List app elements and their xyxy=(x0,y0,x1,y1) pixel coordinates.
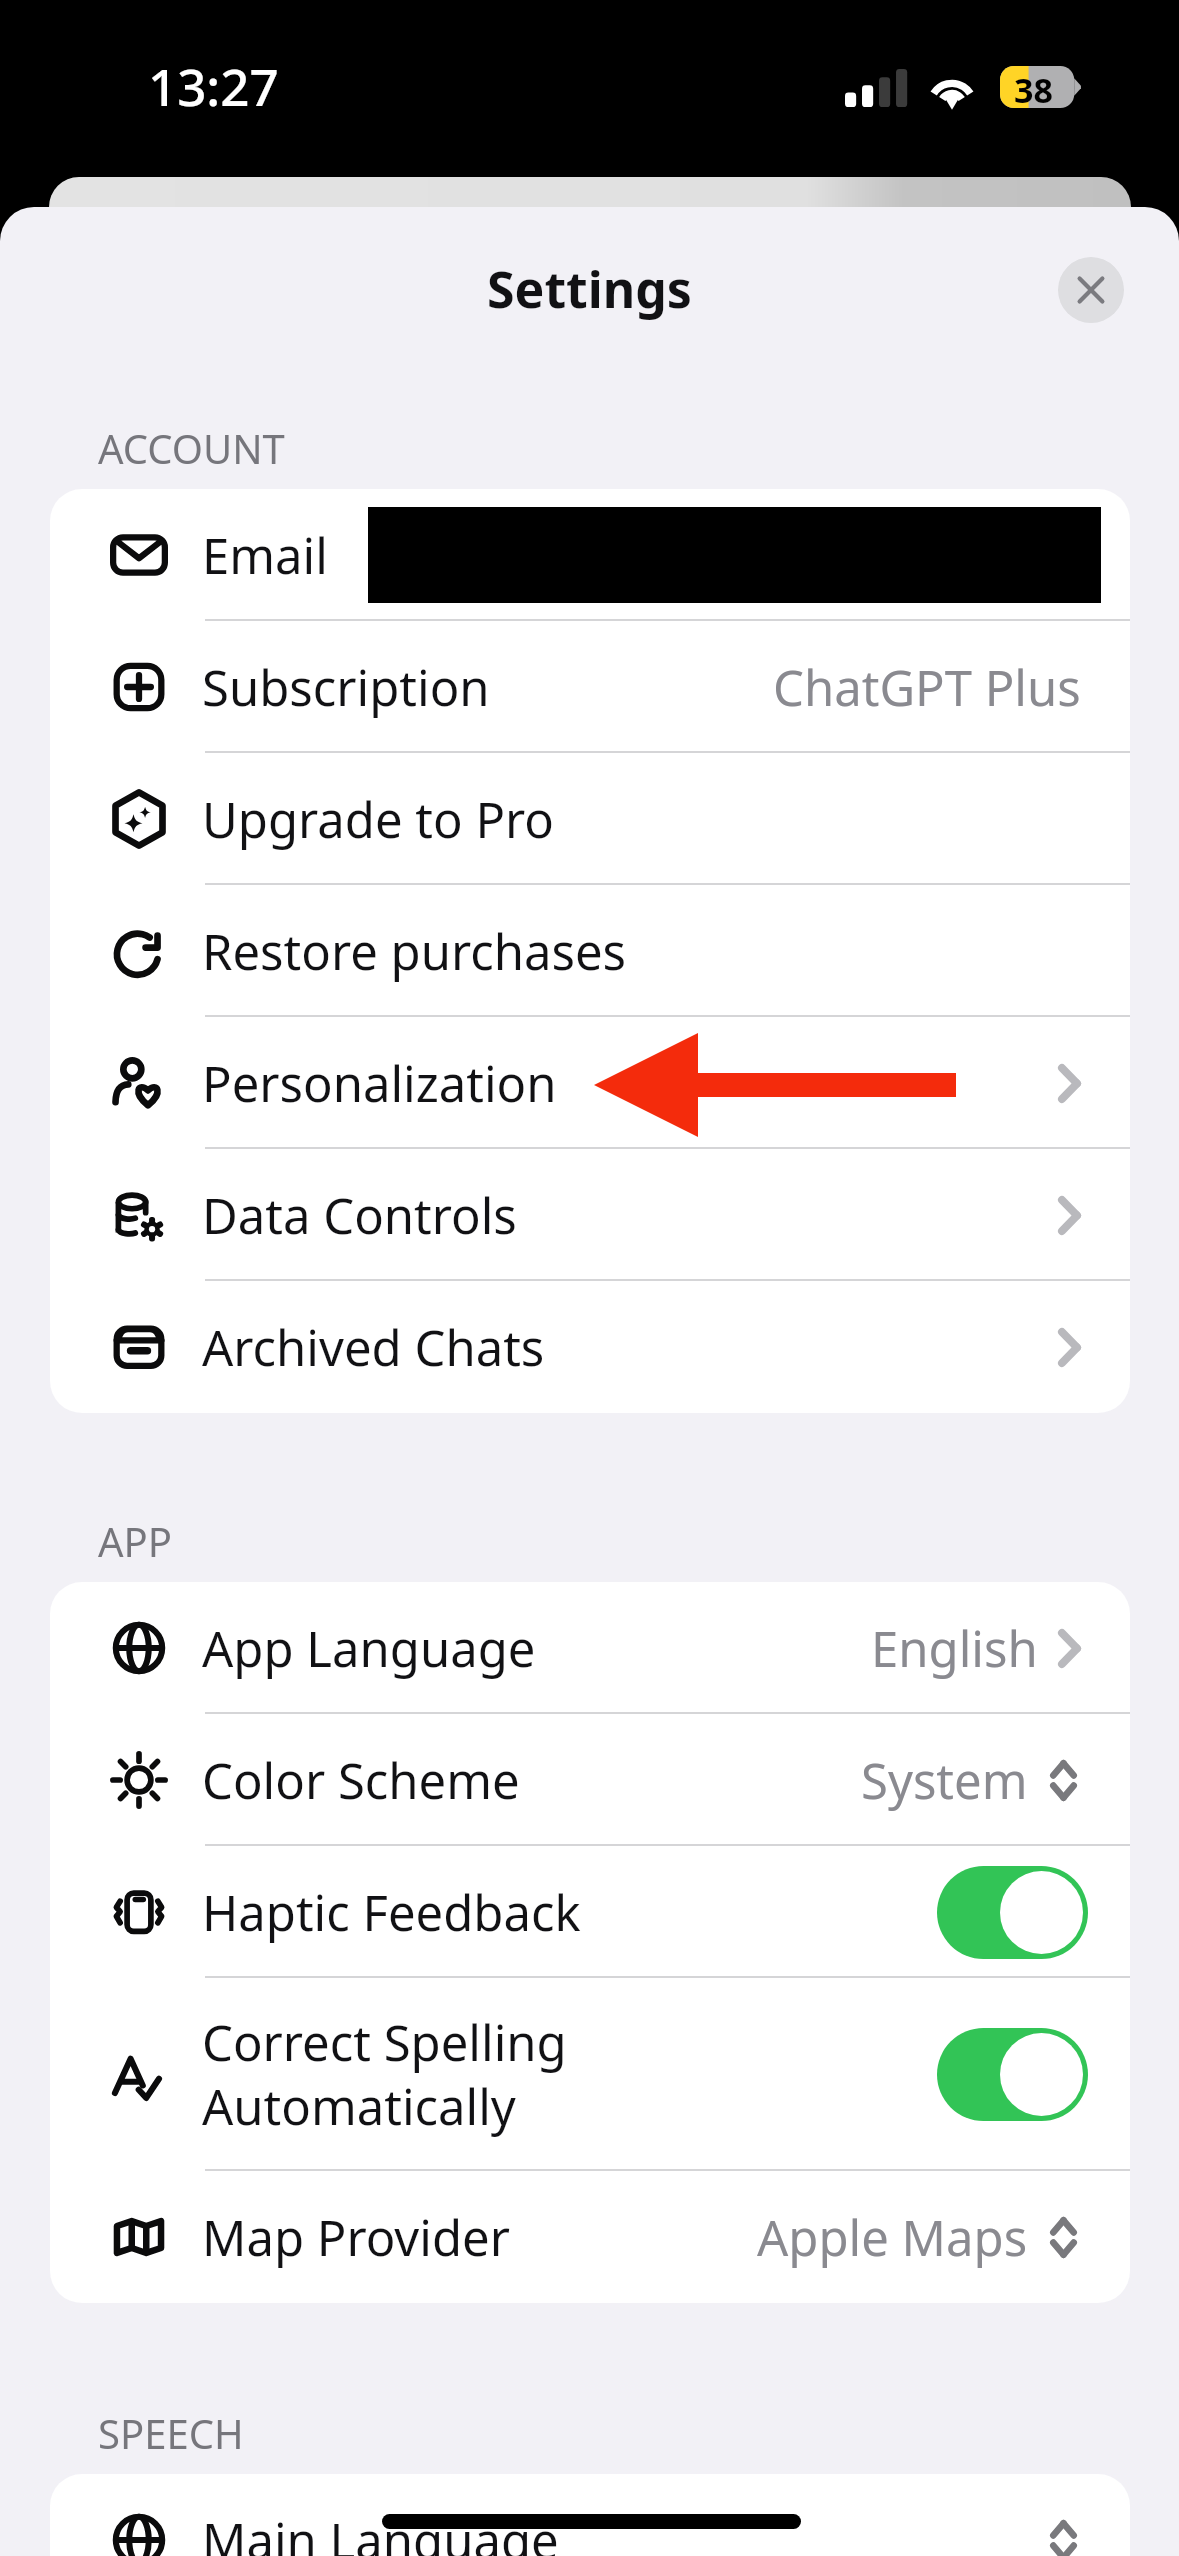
button[interactable]: Correct Spelling Automatically xyxy=(50,1978,1130,2171)
button[interactable]: App Language xyxy=(50,1582,1130,1714)
staticText: Haptic Feedback xyxy=(202,1879,581,1946)
button[interactable]: Upgrade to Pro xyxy=(50,753,1130,885)
staticText: Settings xyxy=(487,255,692,323)
staticText: Main Language xyxy=(202,2507,559,2556)
button[interactable]: Personalization xyxy=(50,1017,1130,1149)
staticText: App Language xyxy=(202,1615,536,1682)
staticText: ChatGPT Plus xyxy=(773,654,1081,721)
button[interactable]: Main Language xyxy=(50,2474,1130,2556)
button[interactable]: Toggle Correct Spelling Automatically xyxy=(937,2028,1088,2121)
staticText: 38 xyxy=(1014,67,1053,113)
staticText: Email xyxy=(202,522,328,589)
staticText: ACCOUNT xyxy=(98,421,285,475)
button[interactable]: Toggle Haptic Feedback xyxy=(937,1866,1088,1959)
button[interactable]: Close settings xyxy=(1058,257,1124,323)
staticText: Subscription xyxy=(202,654,490,721)
button[interactable]: Map Provider xyxy=(50,2171,1130,2303)
staticText: System xyxy=(861,1747,1028,1814)
button[interactable]: Subscription xyxy=(50,621,1130,753)
button[interactable]: Restore purchases xyxy=(50,885,1130,1017)
staticText: Apple Maps xyxy=(757,2204,1028,2271)
staticText: English xyxy=(871,1615,1038,1682)
staticText: Correct Spelling Automatically xyxy=(202,2009,567,2140)
button[interactable]: Data Controls xyxy=(50,1149,1130,1281)
staticText: 13:27 xyxy=(148,51,279,120)
staticText: APP xyxy=(98,1514,172,1568)
button[interactable]: Color Scheme xyxy=(50,1714,1130,1846)
staticText: Archived Chats xyxy=(202,1314,545,1381)
staticText: Map Provider xyxy=(202,2204,510,2271)
button[interactable]: Haptic Feedback xyxy=(50,1846,1130,1978)
staticText: SPEECH xyxy=(98,2406,244,2460)
button[interactable]: Email xyxy=(50,489,1130,621)
staticText: Personalization xyxy=(202,1050,557,1117)
staticText: Color Scheme xyxy=(202,1747,520,1814)
staticText: Restore purchases xyxy=(202,918,627,985)
staticText: Data Controls xyxy=(202,1182,517,1249)
staticText: Upgrade to Pro xyxy=(202,786,554,853)
button[interactable]: Archived Chats xyxy=(50,1281,1130,1413)
